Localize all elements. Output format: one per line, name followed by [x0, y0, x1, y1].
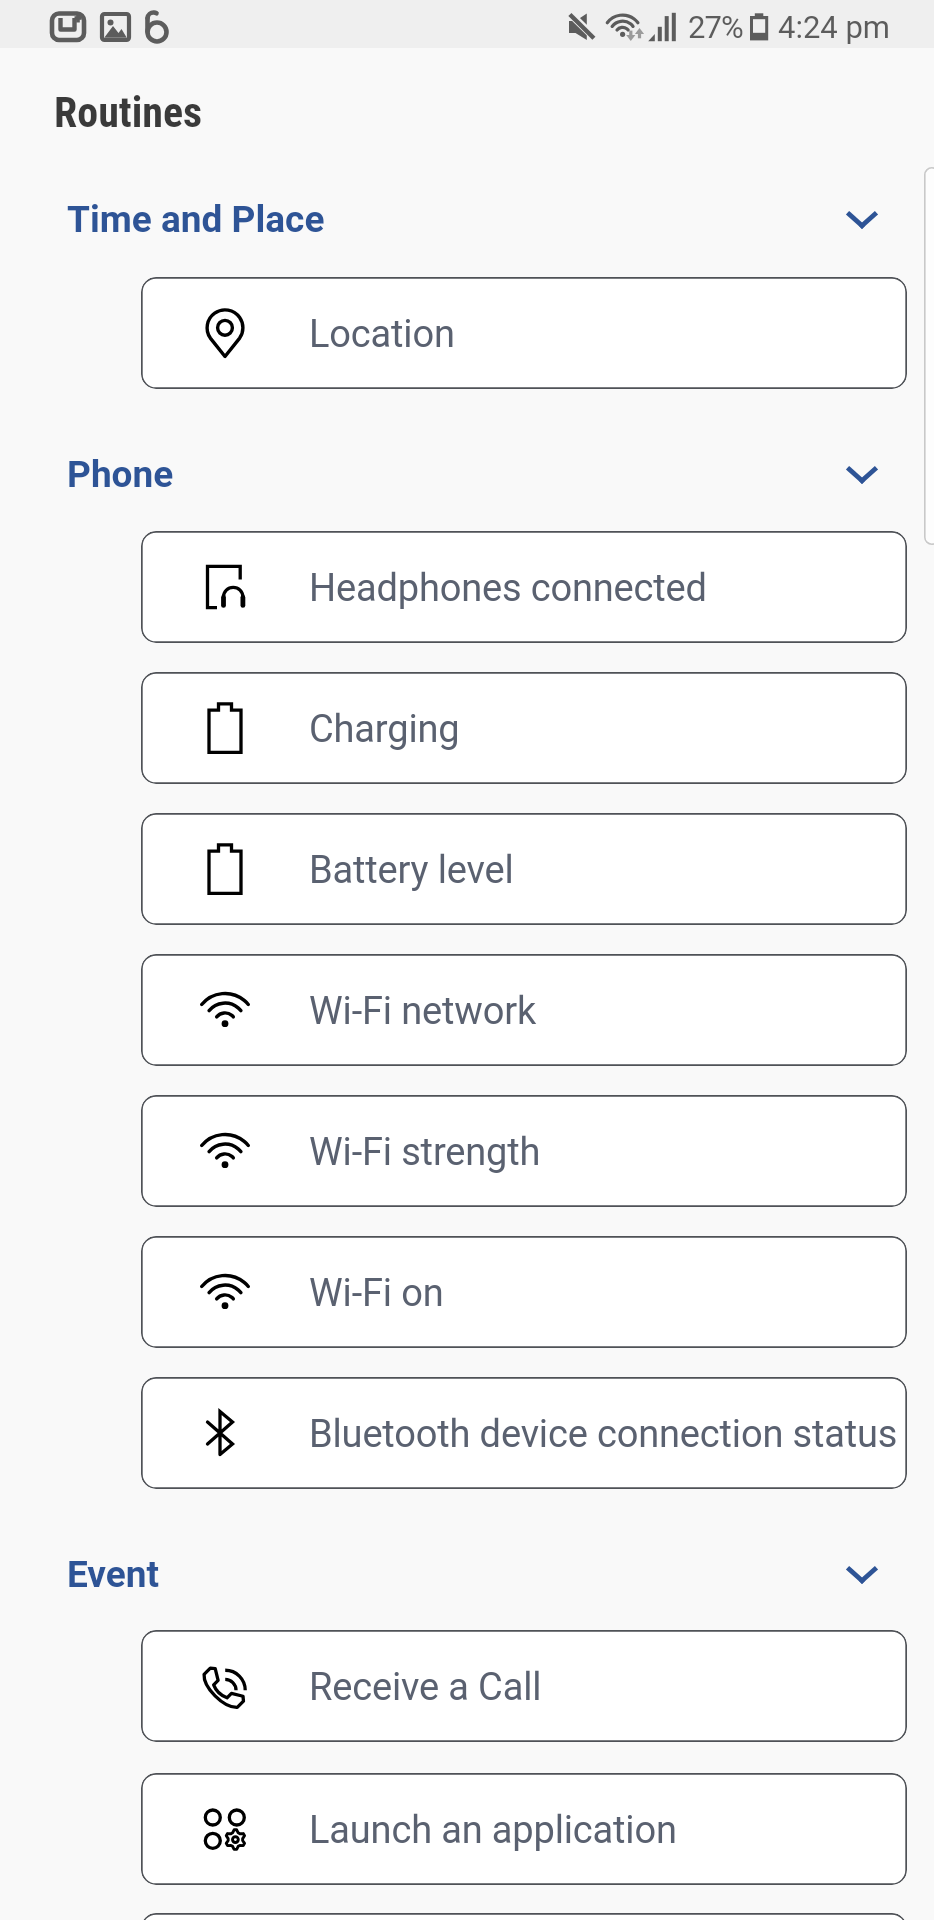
button[interactable]: Location	[141, 277, 907, 389]
staticText: Wi-Fi on	[309, 1271, 444, 1316]
staticText: Bluetooth device connection status	[309, 1412, 898, 1457]
button[interactable]: Receive a Call	[141, 1630, 907, 1742]
button[interactable]: Wi-Fi strength	[141, 1095, 907, 1207]
staticText: Charging	[309, 707, 460, 752]
staticText: Receive a Call	[309, 1665, 542, 1710]
other: Collapse Event	[847, 1567, 877, 1583]
button[interactable]: Headphones connected	[141, 531, 907, 643]
other: Collapse Time and Place	[847, 212, 877, 228]
staticText: Time and Place	[67, 198, 325, 241]
button[interactable]: Time and Place	[0, 181, 934, 257]
staticText: Headphones connected	[309, 566, 707, 611]
staticText: 4:24 pm	[778, 9, 891, 45]
button[interactable]: Event	[0, 1536, 934, 1612]
other: Collapse Phone	[847, 467, 877, 483]
staticText: Event	[67, 1553, 160, 1596]
staticText: Phone	[67, 453, 174, 496]
button[interactable]: Bluetooth device connection status	[141, 1377, 907, 1489]
staticText: Routines	[54, 88, 203, 137]
button[interactable]: Wi-Fi on	[141, 1236, 907, 1348]
staticText: Location	[309, 312, 455, 357]
staticText: 27%	[688, 9, 743, 45]
button[interactable]: Phone	[0, 436, 934, 512]
staticText: Wi-Fi strength	[309, 1130, 541, 1175]
button[interactable]: Charging	[141, 672, 907, 784]
button[interactable]: Schedule	[141, 1913, 907, 1920]
button[interactable]: Battery level	[141, 813, 907, 925]
staticText: Launch an application	[309, 1808, 677, 1853]
button[interactable]: Launch an application	[141, 1773, 907, 1885]
staticText: Battery level	[309, 848, 514, 893]
staticText: Wi-Fi network	[309, 989, 536, 1034]
button[interactable]: Wi-Fi network	[141, 954, 907, 1066]
